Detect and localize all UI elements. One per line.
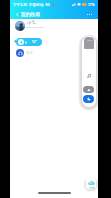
- button[interactable]: Music: [85, 72, 93, 80]
- staticText: 下午3:20 中国移动 5G: [13, 2, 51, 7]
- staticText: 12": [32, 40, 37, 44]
- button[interactable]: Night mode: [83, 95, 94, 103]
- button[interactable]: Music app: [16, 49, 24, 57]
- button[interactable]: Scroll to top: [83, 86, 94, 93]
- staticText: 音乐: [26, 51, 33, 55]
- button[interactable]: Back: [13, 10, 21, 18]
- staticText: 小七: [27, 20, 36, 25]
- button[interactable]: More options: [85, 10, 94, 19]
- staticText: 77%: [88, 2, 96, 7]
- button[interactable]: Play voice message: [16, 38, 42, 46]
- staticText: 我的收藏: [21, 11, 41, 17]
- staticText: 2022-07-16 20:11: [26, 26, 45, 29]
- staticText: 小米: [89, 186, 95, 189]
